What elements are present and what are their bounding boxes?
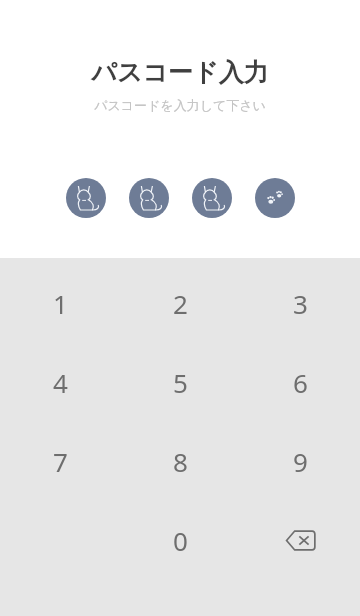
button[interactable]: 2: [120, 264, 240, 343]
staticText: 3: [293, 286, 308, 321]
button[interactable]: 8: [120, 422, 240, 501]
staticText: 6: [293, 365, 308, 400]
button[interactable]: Backspace: [240, 501, 360, 580]
staticText: パスコード入力: [91, 57, 269, 88]
button[interactable]: Passcode digit: [255, 178, 295, 218]
button[interactable]: 1: [0, 264, 120, 343]
button[interactable]: 6: [240, 343, 360, 422]
button[interactable]: 7: [0, 422, 120, 501]
staticText: 1: [53, 286, 68, 321]
button[interactable]: 0: [120, 501, 240, 580]
staticText: 2: [173, 286, 188, 321]
staticText: 0: [173, 523, 188, 558]
staticText: 7: [53, 444, 68, 479]
staticText: パスコードを入力して下さい: [94, 97, 266, 113]
button[interactable]: 4: [0, 343, 120, 422]
staticText: 4: [53, 365, 68, 400]
staticText: 5: [173, 365, 188, 400]
button[interactable]: 5: [120, 343, 240, 422]
button[interactable]: Passcode digit: [192, 178, 232, 218]
staticText: 8: [173, 444, 188, 479]
staticText: 9: [293, 444, 308, 479]
button[interactable]: 3: [240, 264, 360, 343]
button[interactable]: Passcode digit: [66, 178, 106, 218]
button[interactable]: 9: [240, 422, 360, 501]
button[interactable]: Passcode digit: [129, 178, 169, 218]
